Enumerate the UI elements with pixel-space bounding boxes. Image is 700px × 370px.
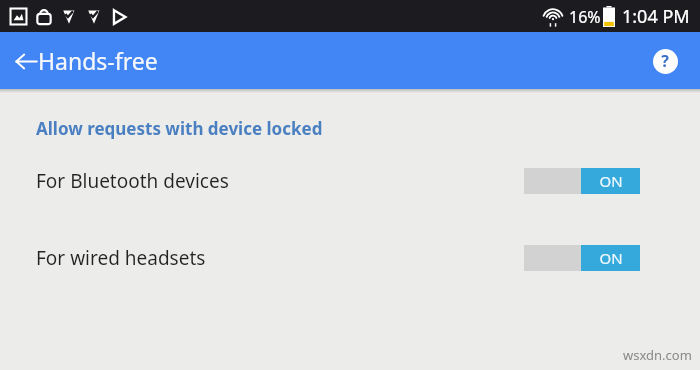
staticText: wsxdn.com [623, 346, 692, 364]
staticText: Hands-free [38, 45, 158, 76]
button[interactable]: Help [648, 44, 682, 78]
staticText: For wired headsets [36, 245, 206, 271]
button[interactable]: Back [6, 41, 46, 81]
staticText: ON [599, 248, 623, 268]
button[interactable]: For wired headsets [0, 241, 700, 275]
staticText: Allow requests with device locked [36, 117, 323, 140]
button[interactable]: For Bluetooth devices [0, 164, 700, 198]
staticText: ON [599, 171, 623, 191]
button[interactable]: ON [524, 245, 640, 271]
staticText: ? [661, 50, 669, 72]
staticText: For Bluetooth devices [36, 168, 229, 194]
staticText: 1:04 PM [622, 4, 690, 29]
staticText: 16% [569, 6, 601, 28]
button[interactable]: ON [524, 168, 640, 194]
